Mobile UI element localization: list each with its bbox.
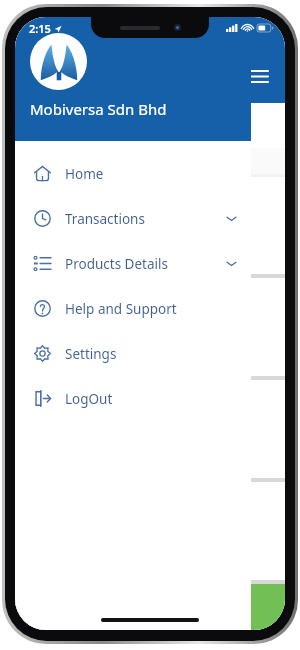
staticText: 2:15 bbox=[29, 21, 51, 36]
button[interactable] bbox=[18, 278, 285, 376]
staticText: Invoice bbox=[21, 154, 59, 169]
button[interactable]: Transactions bbox=[15, 196, 251, 241]
staticText: Settings bbox=[65, 345, 117, 363]
button[interactable]: Open navigation menu bbox=[246, 63, 272, 89]
staticText: Help and Support bbox=[65, 300, 177, 318]
staticText: LogOut bbox=[65, 390, 113, 408]
button[interactable]: Help and Support bbox=[15, 286, 251, 331]
button[interactable]: Settings bbox=[15, 331, 251, 376]
staticText: Mobiversa Sdn Bhd bbox=[30, 99, 167, 119]
button[interactable]: LogOut bbox=[15, 376, 251, 421]
staticText: Products Details bbox=[65, 255, 168, 273]
button[interactable]: Home bbox=[15, 151, 251, 196]
button[interactable] bbox=[18, 177, 285, 274]
staticText: Home bbox=[65, 165, 104, 183]
button[interactable] bbox=[18, 380, 285, 478]
button[interactable]: Products Details bbox=[15, 241, 251, 286]
staticText: Transactions bbox=[65, 210, 145, 228]
